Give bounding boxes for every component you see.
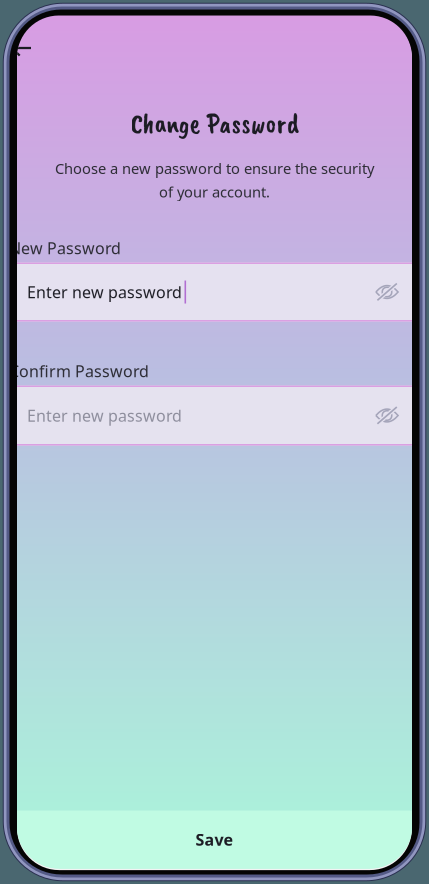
staticText: Confirm Password (9, 360, 149, 382)
button[interactable]: Enter new password (17, 385, 412, 445)
staticText: Enter new password (27, 281, 182, 303)
staticText: Choose a new password to ensure the secu… (55, 158, 374, 178)
staticText: Change Password (130, 105, 298, 141)
staticText: New Password (9, 237, 121, 259)
button[interactable]: Back (10, 38, 32, 58)
button[interactable]: Save (17, 810, 412, 868)
staticText: of your account. (159, 182, 270, 201)
button[interactable]: Enter new password (17, 262, 412, 321)
staticText: Enter new password (27, 405, 182, 426)
staticText: Save (195, 829, 233, 850)
